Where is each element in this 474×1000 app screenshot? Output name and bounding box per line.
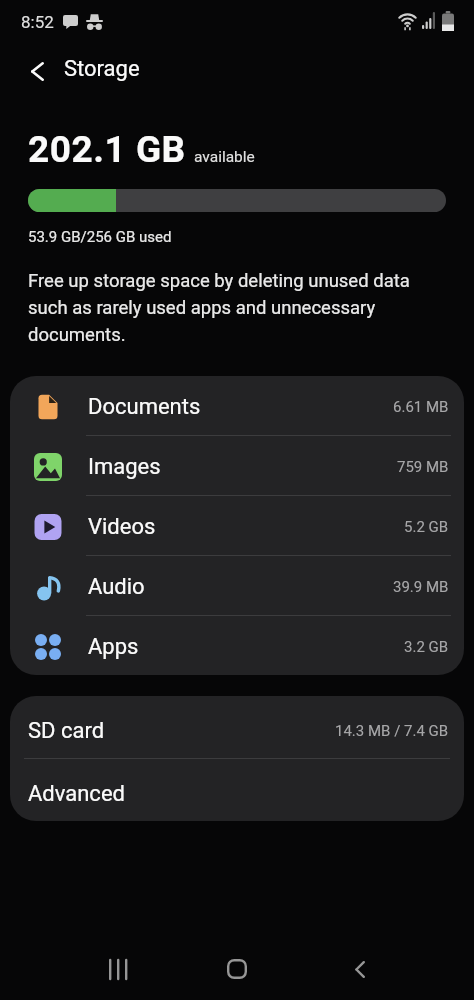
- button[interactable]: [92, 948, 144, 990]
- staticText: 8:52: [21, 12, 54, 32]
- button[interactable]: Audio: [10, 556, 464, 615]
- staticText: 3.2 GB: [404, 638, 449, 656]
- staticText: 202.1 GB: [28, 128, 186, 171]
- button[interactable]: Advanced: [10, 759, 464, 821]
- button[interactable]: Apps: [10, 616, 464, 675]
- staticText: Advanced: [28, 781, 125, 807]
- staticText: 759 MB: [397, 458, 449, 476]
- button[interactable]: [18, 52, 56, 90]
- staticText: Videos: [88, 514, 156, 540]
- staticText: available: [194, 148, 255, 166]
- button[interactable]: Videos: [10, 496, 464, 555]
- button[interactable]: SD card: [10, 696, 464, 758]
- staticText: Documents: [88, 394, 201, 420]
- staticText: 53.9 GB/256 GB used: [28, 228, 172, 246]
- button[interactable]: Documents: [10, 376, 464, 435]
- button[interactable]: Images: [10, 436, 464, 495]
- button[interactable]: [334, 948, 386, 990]
- staticText: Free up storage space by deleting unused…: [28, 270, 410, 346]
- button[interactable]: [211, 948, 263, 990]
- staticText: SD card: [28, 718, 105, 744]
- staticText: 5.2 GB: [404, 518, 449, 536]
- staticText: Images: [88, 454, 161, 480]
- staticText: Apps: [88, 634, 139, 660]
- staticText: Storage: [64, 56, 140, 82]
- staticText: 14.3 MB / 7.4 GB: [335, 722, 449, 740]
- staticText: 39.9 MB: [393, 578, 449, 596]
- staticText: 6.61 MB: [393, 398, 449, 416]
- staticText: Audio: [88, 574, 145, 600]
